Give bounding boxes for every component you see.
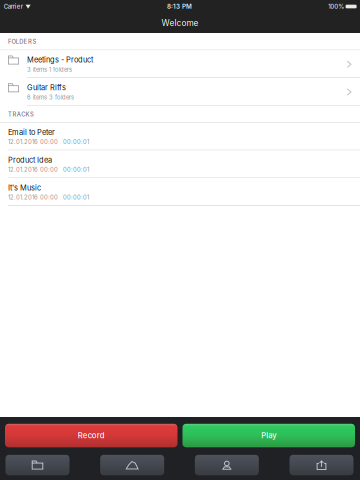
staticText: Welcome <box>161 18 198 28</box>
staticText: Meetings - Product <box>27 55 93 64</box>
button[interactable]: Guitar Riffs <box>0 78 360 106</box>
button[interactable]: Record <box>5 424 177 447</box>
staticText: 12.01.2016 00:00 <box>8 166 58 173</box>
staticText: It's Music <box>8 183 41 192</box>
staticText: 00:00:01 <box>63 166 89 173</box>
staticText: TRACKS <box>8 111 34 118</box>
button[interactable]: Email to Peter <box>0 123 360 150</box>
staticText: 00:00:01 <box>63 194 89 201</box>
staticText: FOLDERS <box>8 38 36 45</box>
button[interactable]: Product Idea <box>0 150 360 178</box>
staticText: 8:13 PM <box>167 3 192 10</box>
staticText: 100% <box>328 3 344 10</box>
staticText: Email to Peter <box>8 128 55 137</box>
staticText: Guitar Riffs <box>27 83 66 92</box>
button[interactable]: Meetings - Product <box>0 50 360 78</box>
staticText: 3 items 1 folders <box>27 66 72 73</box>
staticText: Product Idea <box>8 155 52 164</box>
button[interactable]: Folders <box>5 455 69 475</box>
staticText: Record <box>78 431 105 440</box>
staticText: Carrier <box>4 3 23 10</box>
button[interactable]: Account <box>195 455 259 475</box>
button[interactable]: It's Music <box>0 178 360 206</box>
button[interactable]: Share <box>289 455 353 475</box>
staticText: 00:00:01 <box>63 138 89 145</box>
button[interactable]: Play <box>182 424 355 447</box>
staticText: 12.01.2016 00:00 <box>8 138 58 145</box>
staticText: Play <box>261 431 276 440</box>
button[interactable]: Cloud <box>100 455 164 475</box>
staticText: 6 items 3 folders <box>27 94 74 101</box>
staticText: 12.01.2016 00:00 <box>8 194 58 201</box>
